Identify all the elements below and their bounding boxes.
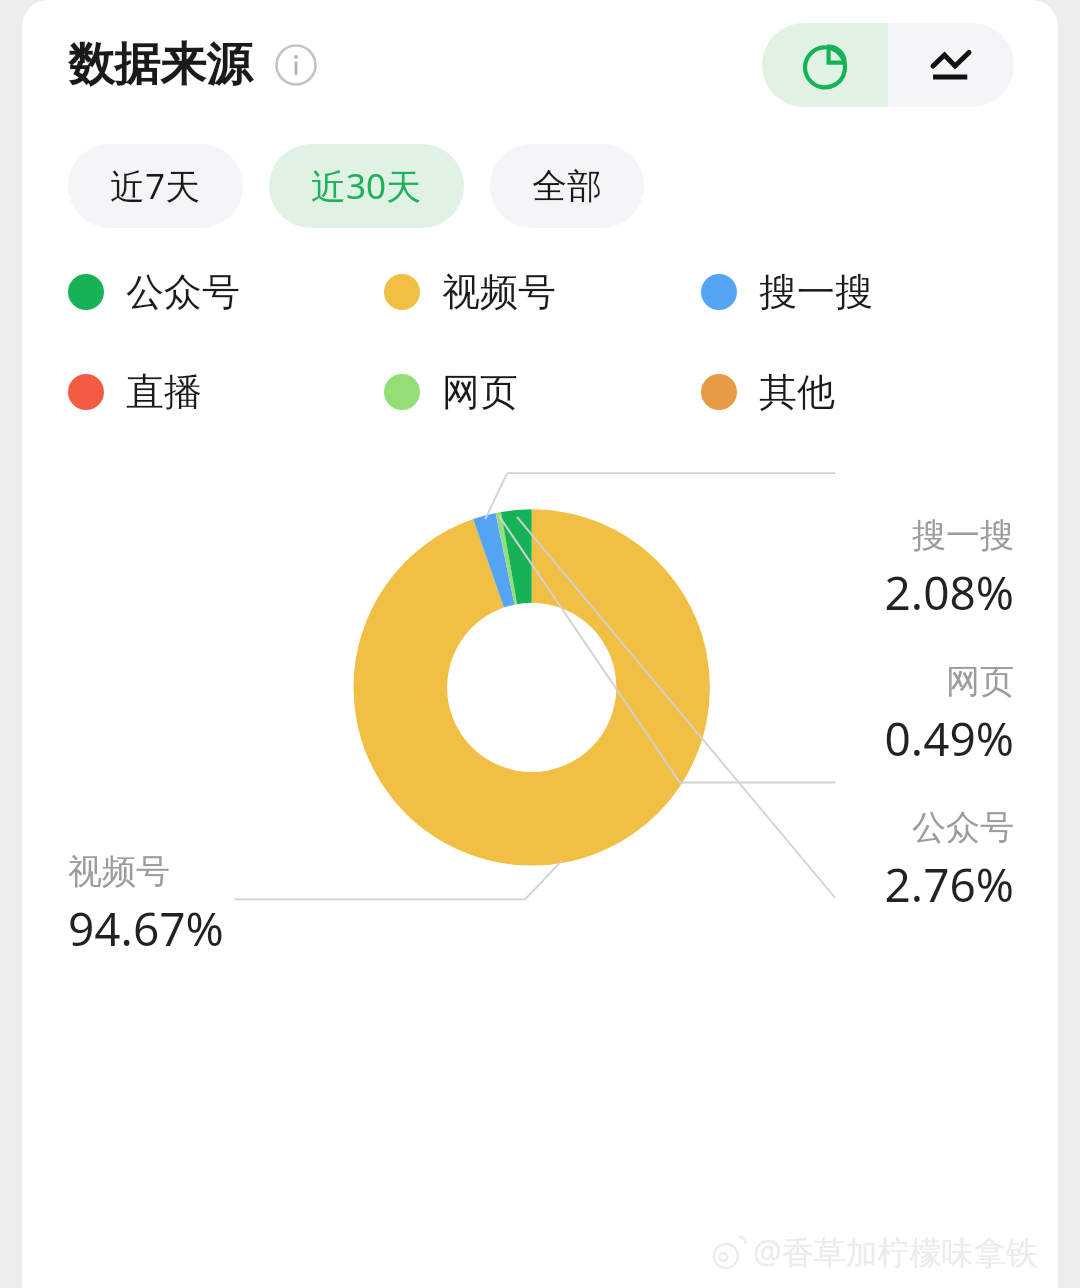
button[interactable]: 视频号: [68, 850, 224, 960]
staticText: 视频号: [442, 268, 556, 316]
button[interactable]: 公众号: [68, 268, 384, 316]
button[interactable]: 网页: [884, 660, 1014, 770]
button[interactable]: 折线图: [888, 23, 1014, 107]
staticText: @香草加柠檬味拿铁: [753, 1230, 1038, 1274]
button[interactable]: 视频号: [384, 268, 701, 316]
staticText: 公众号: [912, 806, 1014, 849]
button[interactable]: 搜一搜: [884, 514, 1014, 624]
staticText: 公众号: [126, 268, 240, 316]
staticText: 搜一搜: [759, 268, 873, 316]
staticText: 近7天: [110, 162, 201, 210]
staticText: 网页: [442, 368, 518, 416]
button[interactable]: 说明: [274, 43, 318, 87]
button[interactable]: 饼图: [762, 23, 888, 107]
staticText: 视频号: [68, 850, 170, 893]
button[interactable]: 公众号: [884, 806, 1014, 916]
button[interactable]: 搜一搜: [701, 268, 1018, 316]
button[interactable]: 全部: [490, 144, 644, 228]
staticText: 全部: [532, 164, 602, 208]
staticText: 0.49%: [884, 707, 1014, 770]
staticText: 数据来源: [68, 36, 252, 94]
button[interactable]: 网页: [384, 368, 701, 416]
staticText: 直播: [126, 368, 202, 416]
staticText: 搜一搜: [912, 514, 1014, 557]
button[interactable]: 直播: [68, 368, 384, 416]
staticText: 网页: [946, 660, 1014, 703]
button[interactable]: 其他: [701, 368, 1018, 416]
staticText: 2.76%: [884, 853, 1014, 916]
staticText: 94.67%: [68, 897, 224, 960]
staticText: 近30天: [311, 162, 422, 210]
button[interactable]: 近7天: [68, 144, 243, 228]
staticText: 其他: [759, 368, 835, 416]
button[interactable]: 近30天: [269, 144, 464, 228]
staticText: 2.08%: [884, 561, 1014, 624]
